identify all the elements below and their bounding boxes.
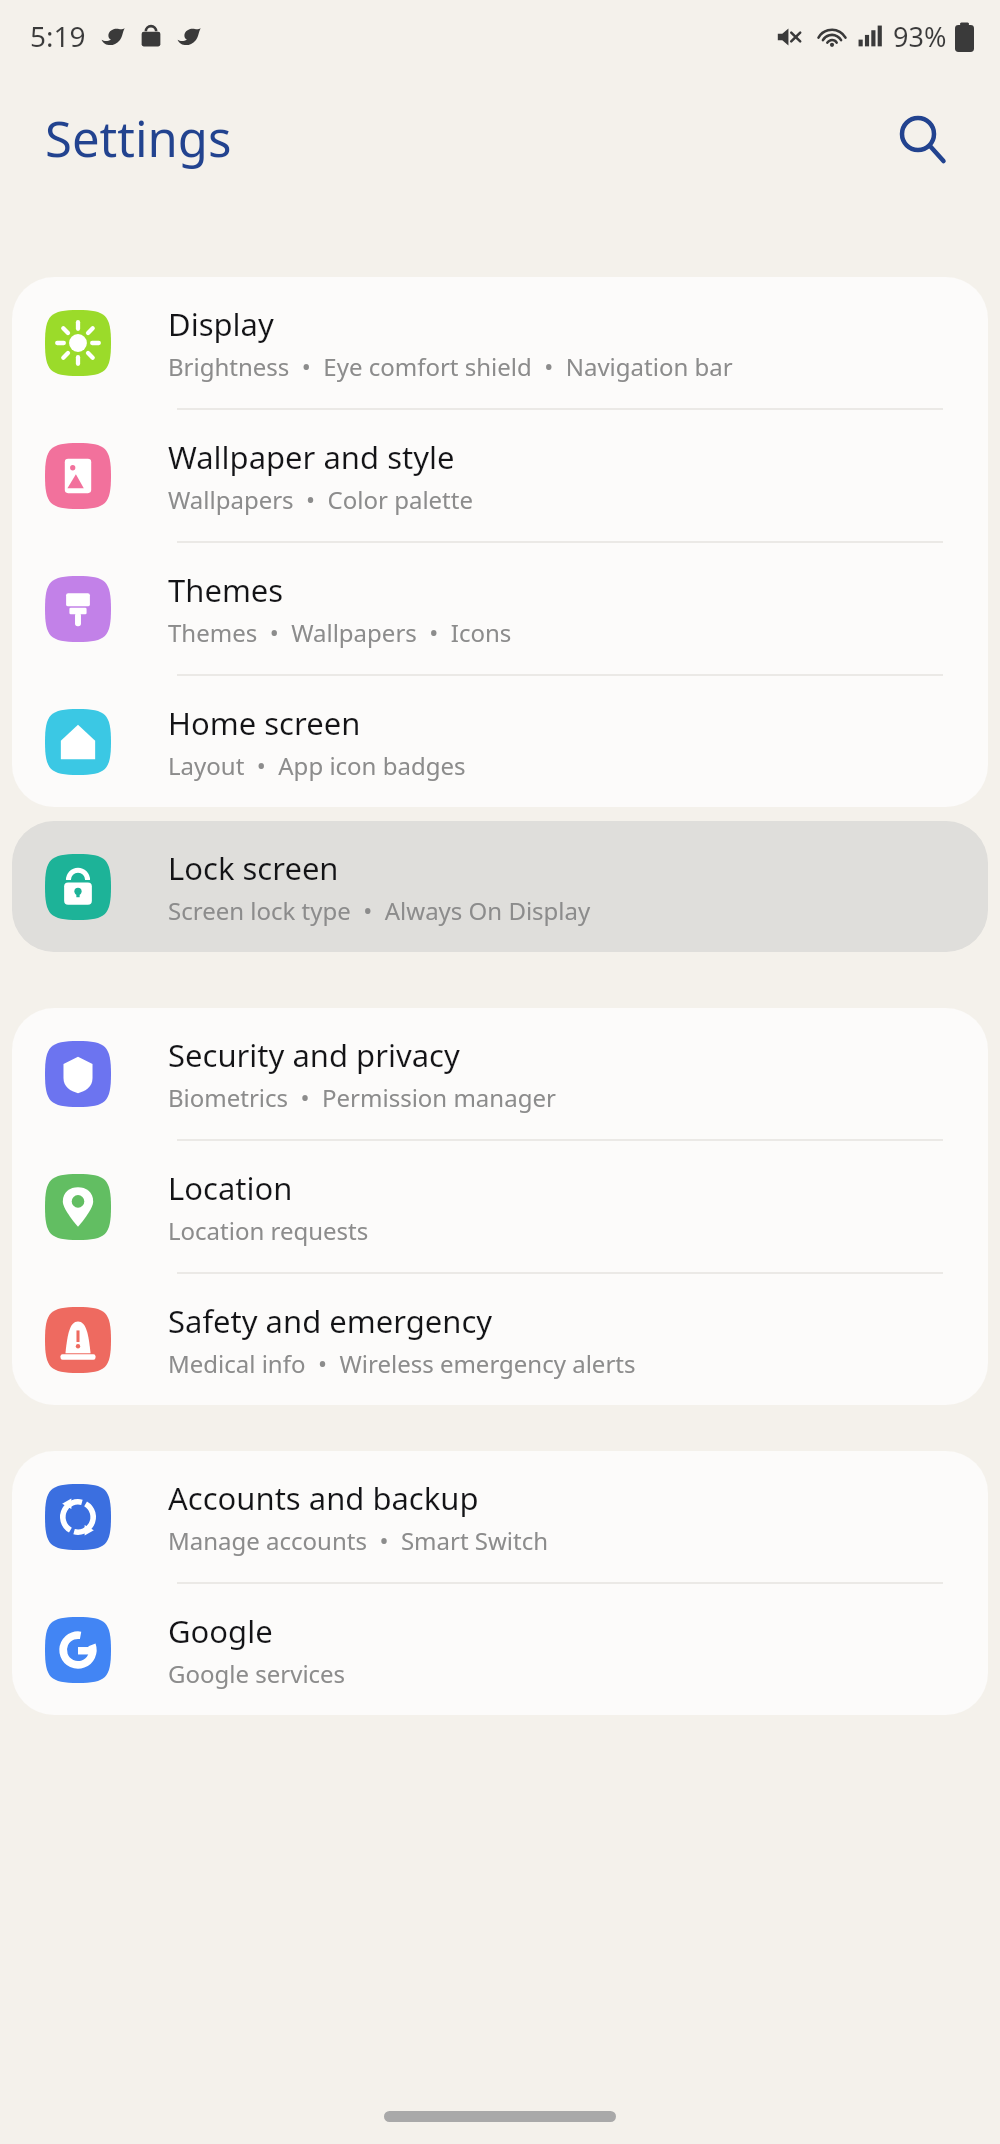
staticText: Biometrics • Permission manager bbox=[168, 1081, 556, 1114]
button[interactable]: Themes bbox=[12, 543, 988, 676]
staticText: Display bbox=[168, 303, 274, 345]
staticText: Layout • App icon badges bbox=[168, 749, 466, 782]
staticText: Screen lock type • Always On Display bbox=[168, 894, 591, 927]
staticText: Location requests bbox=[168, 1214, 369, 1247]
button[interactable]: Search bbox=[880, 97, 964, 181]
staticText: Wallpaper and style bbox=[168, 436, 455, 478]
staticText: Brightness • Eye comfort shield • Naviga… bbox=[168, 350, 733, 383]
staticText: 93% bbox=[893, 18, 947, 55]
staticText: Accounts and backup bbox=[168, 1477, 479, 1519]
staticText: Manage accounts • Smart Switch bbox=[168, 1524, 549, 1557]
staticText: Themes bbox=[168, 569, 284, 611]
staticText: Security and privacy bbox=[168, 1034, 460, 1076]
button[interactable]: Safety and emergency bbox=[12, 1274, 988, 1405]
button[interactable]: Display bbox=[12, 277, 988, 410]
button[interactable]: Wallpaper and style bbox=[12, 410, 988, 543]
staticText: Themes • Wallpapers • Icons bbox=[168, 616, 512, 649]
button[interactable]: Accounts and backup bbox=[12, 1451, 988, 1584]
button[interactable]: Security and privacy bbox=[12, 1008, 988, 1141]
staticText: Wallpapers • Color palette bbox=[168, 483, 473, 516]
staticText: Lock screen bbox=[168, 847, 339, 889]
button[interactable]: Lock screen bbox=[12, 821, 988, 952]
staticText: Safety and emergency bbox=[168, 1300, 493, 1342]
staticText: Location bbox=[168, 1167, 293, 1209]
staticText: Google services bbox=[168, 1657, 346, 1690]
button[interactable]: Home screen bbox=[12, 676, 988, 807]
staticText: Home screen bbox=[168, 702, 361, 744]
staticText: Google bbox=[168, 1610, 273, 1652]
staticText: Medical info • Wireless emergency alerts bbox=[168, 1347, 636, 1380]
staticText: 5:19 bbox=[30, 17, 86, 55]
button[interactable]: Location bbox=[12, 1141, 988, 1274]
staticText: Settings bbox=[45, 105, 232, 172]
button[interactable]: Google bbox=[12, 1584, 988, 1715]
